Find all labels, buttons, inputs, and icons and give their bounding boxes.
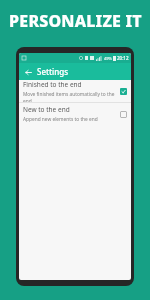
staticText: Move finished items automatically to the… <box>23 91 116 102</box>
staticText: 49% <box>104 56 112 61</box>
staticText: Finished to the end <box>23 80 82 89</box>
staticText: PERSONALIZE IT <box>9 10 142 32</box>
button[interactable]: Unchecked <box>120 111 127 118</box>
button[interactable]: Checked <box>120 88 127 95</box>
button[interactable]: New to the end <box>19 103 131 125</box>
staticText: Append new elements to the end <box>23 116 98 123</box>
staticText: 20:12 <box>117 55 129 61</box>
button[interactable]: Back <box>22 66 34 78</box>
staticText: New to the end <box>23 105 70 114</box>
staticText: Settings <box>37 66 69 77</box>
button[interactable]: Finished to the end <box>19 80 131 102</box>
